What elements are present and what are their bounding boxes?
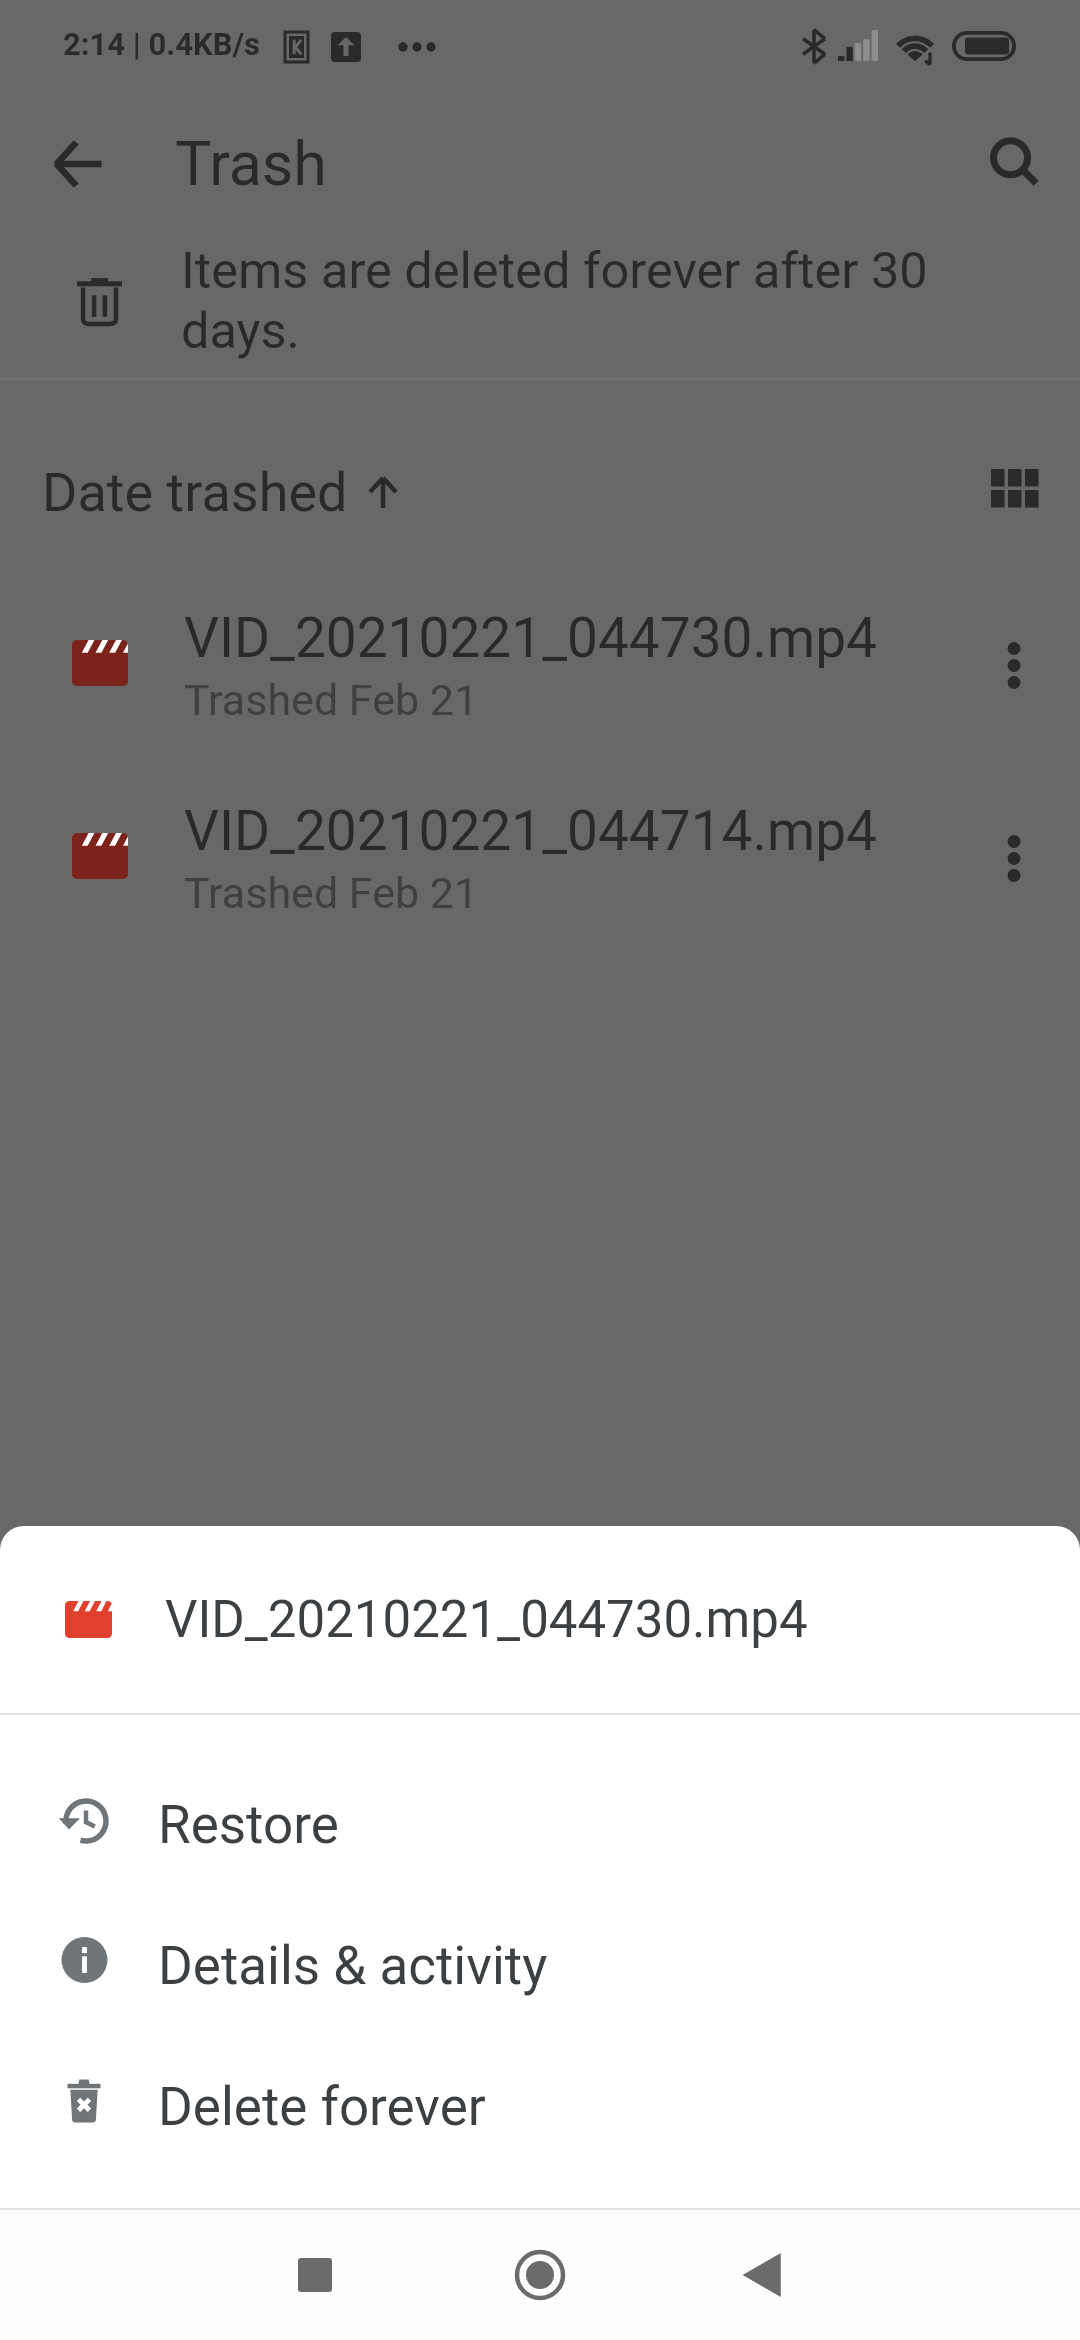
button[interactable]: Back [651, 2210, 873, 2340]
staticText: Date trashed [42, 461, 348, 524]
button[interactable]: VID_20210221_044730.mp4 [0, 1526, 1080, 1713]
button[interactable]: Search [967, 117, 1063, 213]
staticText: VID_20210221_044714.mp4 [184, 799, 877, 863]
button[interactable]: Restore [0, 1754, 1080, 1895]
button[interactable]: Grid view [970, 441, 1060, 531]
staticText: Delete forever [158, 2076, 486, 2138]
button[interactable]: Home [429, 2210, 651, 2340]
button[interactable]: Back [30, 115, 126, 211]
button[interactable]: Recent apps [207, 2210, 429, 2340]
staticText: Items are deleted forever after 30 days. [181, 241, 951, 360]
staticText: Details & activity [158, 1935, 548, 1997]
button[interactable]: VID_20210221_044730.mp4 [0, 562, 1080, 755]
button[interactable]: More options [969, 812, 1059, 904]
staticText: Trashed Feb 21 [184, 868, 479, 918]
button[interactable]: More options [969, 619, 1059, 711]
button[interactable]: Date trashed [26, 441, 416, 544]
staticText: Trashed Feb 21 [184, 675, 479, 725]
button[interactable]: Details & activity [0, 1895, 1080, 2036]
staticText: Trash [175, 128, 327, 199]
staticText: 2:14 | 0.4KB/s [63, 26, 261, 62]
staticText: VID_20210221_044730.mp4 [184, 606, 877, 670]
staticText: VID_20210221_044730.mp4 [165, 1590, 808, 1650]
button[interactable]: Delete forever [0, 2036, 1080, 2177]
staticText: Restore [158, 1794, 339, 1856]
button[interactable]: VID_20210221_044714.mp4 [0, 755, 1080, 948]
